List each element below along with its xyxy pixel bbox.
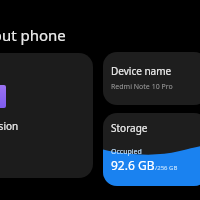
staticText: Device name [111,64,172,78]
button[interactable]: Storage [103,113,200,186]
staticText: 92.6 GB [111,157,155,173]
staticText: /256 GB [155,164,178,172]
staticText: Occupied [111,147,142,157]
staticText: Redmi Note 10 Pro [111,82,173,92]
button[interactable]: Device name [103,52,200,105]
staticText: MIUI version [0,119,19,133]
staticText: Storage [111,121,148,135]
button[interactable]: About phone [0,25,66,45]
staticText: About phone [0,25,66,45]
button[interactable]: MIUI version [0,53,93,178]
